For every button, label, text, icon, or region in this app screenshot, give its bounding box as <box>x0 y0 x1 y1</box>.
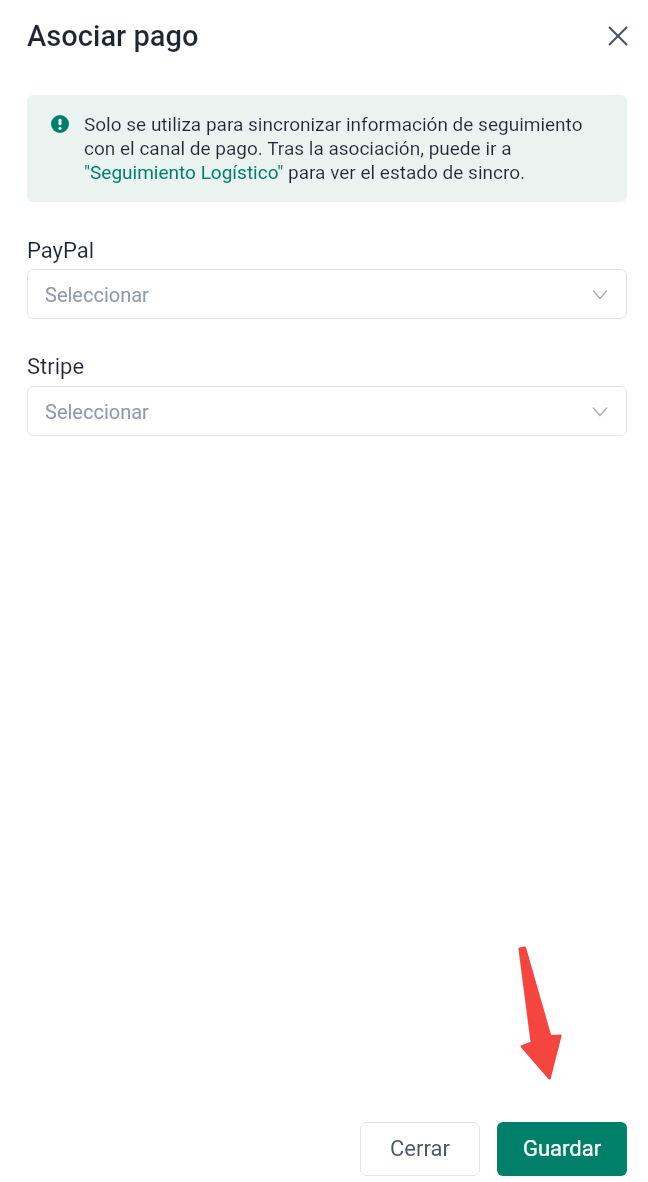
staticText: Seleccionar <box>45 400 149 423</box>
staticText: PayPal <box>27 238 95 264</box>
button[interactable]: Cerrar <box>360 1122 480 1176</box>
button[interactable]: Seleccionar <box>27 269 627 319</box>
other: Desplegar <box>593 408 607 416</box>
other: Desplegar <box>593 291 607 299</box>
button[interactable]: Seleccionar <box>27 386 627 436</box>
staticText: Asociar pago <box>27 19 199 53</box>
staticText: Cerrar <box>390 1136 450 1162</box>
button[interactable]: Cerrar <box>594 12 641 59</box>
staticText: Stripe <box>27 354 85 380</box>
staticText: Guardar <box>523 1136 602 1162</box>
staticText: Seleccionar <box>45 283 149 306</box>
staticText: Solo se utiliza para sincronizar informa… <box>84 112 583 184</box>
button[interactable]: Guardar <box>497 1122 627 1176</box>
